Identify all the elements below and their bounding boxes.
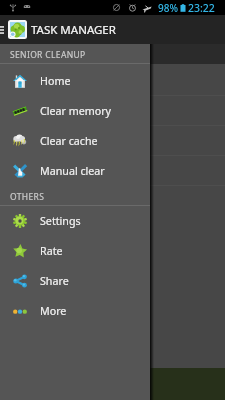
button[interactable]: Home: [0, 66, 150, 96]
button[interactable]: Clear cache: [0, 126, 150, 156]
staticText: Clear cache: [40, 134, 98, 149]
staticText: Home: [40, 74, 71, 89]
staticText: Share: [40, 274, 69, 289]
button[interactable]: Share: [0, 266, 150, 296]
button[interactable]: Rate: [0, 236, 150, 266]
staticText: SENIOR CLEANUP: [10, 49, 86, 61]
staticText: TASK MANAGER: [31, 22, 116, 38]
staticText: Settings: [40, 214, 81, 229]
staticText: OTHERS: [10, 191, 45, 203]
staticText: 98%: [158, 1, 178, 15]
button[interactable]: Manual clear: [0, 156, 150, 186]
staticText: 23:22: [188, 1, 215, 15]
button[interactable]: Open navigation drawer: [0, 15, 4, 44]
button[interactable]: Clear memory: [0, 96, 150, 126]
button[interactable]: Settings: [0, 206, 150, 236]
staticText: More: [40, 304, 67, 319]
staticText: Manual clear: [40, 164, 105, 179]
button[interactable]: More: [0, 296, 150, 326]
staticText: Clear memory: [40, 104, 112, 119]
staticText: Rate: [40, 244, 63, 259]
